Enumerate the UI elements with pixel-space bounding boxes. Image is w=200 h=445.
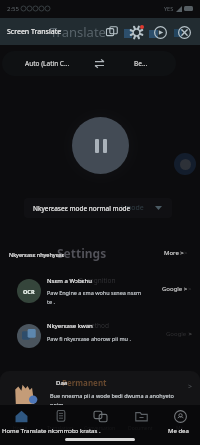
staticText: Translation <box>47 425 74 432</box>
staticText: Nsɛm a Wɔbɛhu <box>47 277 92 285</box>
staticText: Paw Engine a ɛma wohu sɛnea nsɛm <box>47 289 142 296</box>
staticText: Nkyerɛaseɛ mode normal mode <box>33 204 131 213</box>
button[interactable]: Settings <box>124 19 148 45</box>
staticText: Paw fi nkyɛrɛase ahorow pii mu . <box>47 335 131 342</box>
staticText: nnim . <box>50 401 67 408</box>
staticText: > <box>184 249 188 257</box>
staticText: Me dea <box>168 427 189 435</box>
button[interactable]: Swap languages <box>88 51 110 76</box>
staticText: Recognition <box>79 276 116 285</box>
staticText: method <box>85 321 110 330</box>
staticText: Google <box>166 330 187 338</box>
button[interactable]: Conversation <box>80 409 120 433</box>
button[interactable]: OCR <box>0 268 200 314</box>
staticText: Nkyerɛase kwan <box>47 322 93 330</box>
staticText: Conversation <box>84 425 116 432</box>
button[interactable]: Pause <box>72 117 129 174</box>
staticText: OCR <box>23 288 35 295</box>
button[interactable]: Home <box>0 409 40 433</box>
staticText: Home <box>13 425 28 432</box>
button[interactable]: l mode <box>24 198 172 218</box>
staticText: > <box>188 382 193 392</box>
staticText: Be... <box>134 59 148 68</box>
button[interactable]: Floating translate bubble <box>174 153 196 175</box>
button[interactable] <box>0 371 200 411</box>
staticText: Me <box>176 425 184 432</box>
staticText: Translate <box>50 23 106 41</box>
button[interactable]: Document <box>120 409 160 433</box>
staticText: Permanent <box>62 377 107 388</box>
staticText: Bue nneɛma pii a wode bedi dwuma a anohy… <box>50 392 174 399</box>
staticText: Home Translate nkɔmmɔbɔ kratas . <box>2 427 101 435</box>
button[interactable]: Me <box>160 409 200 433</box>
button[interactable]: method <box>0 316 200 362</box>
button[interactable]: Be... <box>110 51 172 76</box>
button[interactable]: Translation <box>40 409 80 433</box>
staticText: Google > <box>162 285 188 293</box>
staticText: Auto (Latin C... <box>25 59 70 68</box>
staticText: More > <box>164 249 184 257</box>
staticText: > <box>188 285 192 293</box>
button[interactable]: Close <box>172 19 196 45</box>
staticText: Screen Translate <box>7 27 62 37</box>
staticText: Nkyerɛasɛ nhyehyɛeɛ <box>9 251 65 258</box>
button[interactable]: Auto (Latin C... <box>6 51 88 76</box>
button[interactable]: More > <box>162 247 190 259</box>
staticText: te . <box>47 298 55 305</box>
staticText: > <box>187 330 192 338</box>
button[interactable]: Picture in picture <box>100 19 124 45</box>
button[interactable]: Start translation <box>148 19 172 45</box>
staticText: l mode <box>121 203 144 213</box>
staticText: 2:55 <box>7 5 19 13</box>
staticText: Daa <box>56 379 68 387</box>
staticText: Settings <box>57 245 107 261</box>
staticText: YES <box>164 5 174 12</box>
